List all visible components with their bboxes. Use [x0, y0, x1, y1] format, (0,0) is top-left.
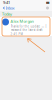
- staticText: Alex Morgan: [10, 18, 33, 24]
- staticText: Today: [2, 11, 12, 17]
- staticText: Thanks for the update — I reviewed the l…: [10, 25, 46, 32]
- button[interactable]: Inbox: [2, 5, 15, 11]
- button[interactable]: Alex Morgan: [0, 17, 52, 36]
- staticText: 9:41: [3, 0, 10, 5]
- button[interactable]: More: [45, 5, 50, 10]
- staticText: 2:45 PM: [10, 32, 22, 36]
- staticText: Inbox: [5, 5, 14, 11]
- staticText: ▮▮▮: [46, 1, 49, 4]
